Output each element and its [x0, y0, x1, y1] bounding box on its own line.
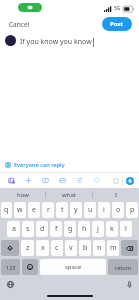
staticText: If you know you know [20, 37, 92, 47]
staticText: Cancel [9, 20, 30, 29]
staticText: x [41, 243, 45, 253]
button[interactable]: I [93, 188, 139, 201]
button[interactable]: s [22, 221, 34, 237]
staticText: how [17, 191, 29, 199]
staticText: l [125, 224, 127, 234]
button[interactable]: p [126, 202, 138, 218]
button[interactable]: List [71, 173, 88, 188]
button[interactable]: Everyone can reply [5, 161, 139, 168]
staticText: v [69, 243, 73, 253]
staticText: m [110, 243, 117, 253]
button[interactable]: y [70, 202, 82, 218]
button[interactable]: m [107, 240, 119, 256]
button[interactable]: f [50, 221, 62, 237]
button[interactable]: v [65, 240, 77, 256]
staticText: I [115, 191, 118, 199]
button[interactable]: Location [88, 173, 105, 188]
staticText: c [55, 243, 59, 253]
staticText: z [26, 243, 30, 253]
staticText: a [12, 224, 16, 234]
staticText: space [65, 263, 82, 271]
staticText: h [82, 224, 87, 234]
button[interactable]: u [84, 202, 96, 218]
staticText: e [32, 205, 36, 215]
staticText: f [55, 224, 58, 234]
staticText: r [47, 205, 50, 215]
button[interactable]: j [92, 221, 104, 237]
button[interactable]: z [21, 240, 34, 256]
button[interactable]: Length [110, 175, 122, 187]
button[interactable]: GIF [20, 173, 37, 188]
button[interactable]: c [51, 240, 63, 256]
button[interactable]: Profile [5, 35, 16, 46]
staticText: 5G [114, 5, 121, 12]
button[interactable]: g [64, 221, 76, 237]
staticText: d [40, 224, 45, 234]
staticText: y [74, 205, 78, 215]
button[interactable]: e [28, 202, 40, 218]
button[interactable]: space [40, 259, 106, 275]
button[interactable]: l [120, 221, 132, 237]
button[interactable]: k [106, 221, 118, 237]
button[interactable]: q [1, 202, 12, 218]
button[interactable]: h [78, 221, 90, 237]
button[interactable]: 123 [1, 259, 20, 275]
staticText: p [130, 205, 135, 215]
button[interactable]: Poll [37, 173, 54, 188]
button[interactable]: Backspace [121, 240, 138, 256]
button[interactable]: Change keyboard [4, 278, 16, 290]
staticText: what [62, 191, 76, 199]
button[interactable]: o [112, 202, 124, 218]
staticText: 123 [6, 264, 16, 271]
button[interactable]: Image [54, 173, 71, 188]
button[interactable]: a [7, 221, 20, 237]
button[interactable]: Dictate [123, 278, 135, 290]
button[interactable]: how [0, 188, 45, 201]
button[interactable]: Media [3, 173, 20, 188]
button[interactable]: what [46, 188, 92, 201]
staticText: Everyone can reply [14, 161, 65, 168]
staticText: k [110, 224, 114, 234]
staticText: s [26, 224, 30, 234]
button[interactable]: x [36, 240, 49, 256]
staticText: return [115, 264, 132, 271]
button[interactable]: Cancel [7, 18, 32, 31]
button[interactable]: b [79, 240, 91, 256]
button[interactable]: i [98, 202, 110, 218]
staticText: i [103, 205, 105, 215]
staticText: n [97, 243, 102, 253]
staticText: Post [110, 20, 124, 28]
staticText: j [97, 224, 99, 234]
button[interactable]: r [42, 202, 54, 218]
button[interactable]: n [93, 240, 105, 256]
button[interactable]: Shift [1, 240, 19, 256]
staticText: u [88, 205, 93, 215]
button[interactable]: w [14, 202, 26, 218]
button[interactable]: return [108, 259, 138, 275]
button[interactable]: Add post [123, 174, 136, 187]
staticText: o [116, 205, 121, 215]
staticText: b [83, 243, 88, 253]
staticText: w [17, 205, 23, 215]
staticText: g [68, 224, 73, 234]
button[interactable]: d [36, 221, 48, 237]
button[interactable]: t [56, 202, 68, 218]
button[interactable]: Post [102, 17, 132, 31]
button[interactable]: Emoji [22, 259, 38, 275]
staticText: t [61, 205, 64, 215]
staticText: q [4, 205, 9, 215]
